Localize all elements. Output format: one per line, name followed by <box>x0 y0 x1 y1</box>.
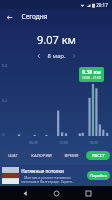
staticText: ВРЕМЯ <box>64 153 79 159</box>
staticText: 0.4 <box>2 63 7 68</box>
staticText: 18:00 <box>89 140 98 145</box>
staticText: 8 мар. <box>47 52 66 60</box>
staticText: 06:00 <box>29 140 38 145</box>
button[interactable]: Back <box>18 186 32 200</box>
button[interactable]: Перейти <box>87 171 110 180</box>
staticText: ШАГ <box>8 153 18 159</box>
button[interactable]: Previous day <box>34 51 44 61</box>
button[interactable]: Натяжные потолки <box>0 165 112 186</box>
staticText: 12:00 <box>59 140 68 145</box>
staticText: Сегодня <box>21 12 48 21</box>
staticText: 9.07 км <box>37 32 76 47</box>
staticText: КАЛОРИИ <box>31 153 52 159</box>
staticText: Натяжные потолки <box>21 168 64 174</box>
button[interactable]: РАССТ <box>86 151 110 160</box>
button[interactable]: Home <box>49 186 63 200</box>
staticText: 18:00 - 21:00 <box>82 76 101 80</box>
staticText: 20:17 <box>96 2 108 8</box>
staticText: 0 <box>2 132 5 137</box>
button[interactable]: ШАГ <box>2 151 24 160</box>
button[interactable]: 0.38 км <box>79 67 104 82</box>
button[interactable]: ВРЕМЯ <box>59 151 84 160</box>
button[interactable]: Next day <box>69 51 79 61</box>
staticText: Перейти <box>90 173 107 178</box>
staticText: 0.2 <box>2 98 7 103</box>
staticText: 0.38 км <box>82 69 101 76</box>
button[interactable]: КАЛОРИИ <box>26 151 57 160</box>
staticText: РАССТ <box>92 153 105 159</box>
staticText: Монтаж и ремонт натяжных потолков в Волг… <box>21 175 74 184</box>
button[interactable]: Back <box>3 11 15 23</box>
button[interactable]: Recents <box>81 186 95 200</box>
